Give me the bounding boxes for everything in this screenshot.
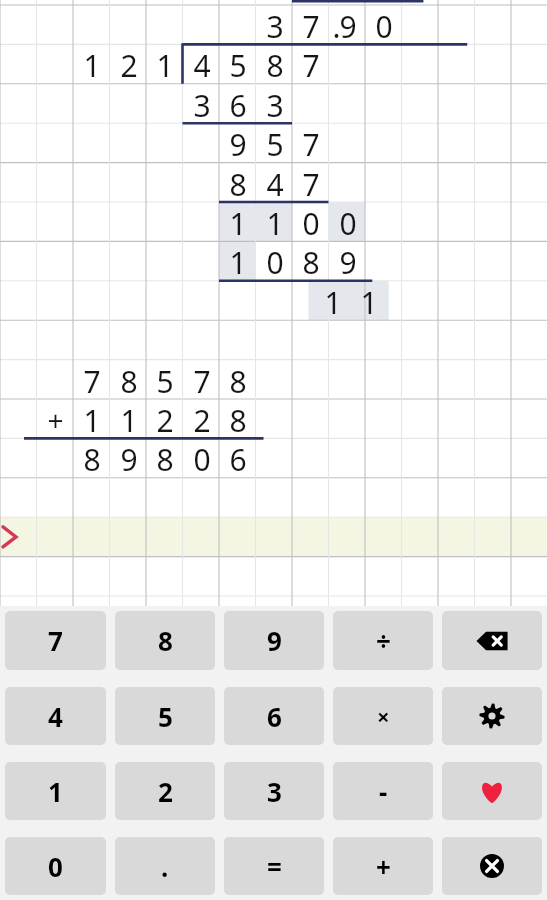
button[interactable]: Backspace [442,611,542,670]
staticText: 3 [266,6,284,45]
button[interactable]: 1 [5,762,106,820]
staticText: 7 [302,6,320,45]
staticText: 1 [83,400,101,439]
staticText: 9 [339,6,357,45]
staticText: 2 [193,400,211,439]
staticText: = [267,849,282,884]
staticText: 2 [120,45,138,84]
button[interactable]: 3 [224,762,324,820]
staticText: 5 [156,361,174,400]
staticText: + [376,849,391,884]
staticText: 7 [302,45,320,84]
staticText: 8 [83,439,101,478]
staticText: 5 [266,124,284,163]
staticText: 8 [266,45,284,84]
staticText: 4 [193,45,211,84]
button[interactable]: 4 [5,687,106,745]
staticText: 8 [156,439,174,478]
staticText: . [332,6,341,45]
staticText: 7 [83,361,101,400]
staticText: 9 [339,242,357,281]
staticText: 0 [375,6,393,45]
staticText: + [47,401,64,439]
staticText: 8 [158,623,173,658]
staticText: 7 [302,164,320,203]
staticText: 7 [302,124,320,163]
staticText: 9 [229,124,247,163]
staticText: 1 [229,242,247,281]
staticText: 3 [266,85,284,124]
staticText: 8 [302,242,320,281]
button[interactable]: 2 [115,762,215,820]
staticText: 1 [229,203,247,242]
staticText: 3 [193,85,211,124]
button[interactable]: 0 [5,837,106,895]
button[interactable]: - [333,762,433,820]
staticText: 1 [266,203,284,242]
staticText: 9 [267,623,282,658]
button[interactable]: 9 [224,611,324,670]
staticText: 1 [48,774,63,809]
staticText: 0 [302,203,320,242]
button[interactable]: 6 [224,687,324,745]
staticText: 6 [267,699,282,734]
button[interactable]: 8 [115,611,215,670]
button[interactable]: + [333,837,433,895]
button[interactable]: 7 [5,611,106,670]
button[interactable]: Clear [442,837,542,895]
staticText: 1 [83,45,101,84]
staticText: 2 [158,774,173,809]
button[interactable]: 5 [115,687,215,745]
staticText: 8 [120,361,138,400]
staticText: 0 [193,439,211,478]
button[interactable]: . [115,837,215,895]
staticText: 1 [120,400,138,439]
button[interactable]: × [333,687,433,745]
staticText: 8 [229,361,247,400]
staticText: 8 [229,400,247,439]
staticText: 7 [193,361,211,400]
staticText: 2 [156,400,174,439]
staticText: 0 [266,242,284,281]
staticText: 8 [229,164,247,203]
button[interactable]: Settings [442,687,542,745]
button[interactable]: ÷ [333,611,433,670]
staticText: 1 [156,45,174,84]
staticText: 0 [48,849,63,884]
staticText: 4 [48,699,63,734]
staticText: 3 [267,774,282,809]
staticText: 6 [229,439,247,478]
button[interactable]: = [224,837,324,895]
staticText: . [161,849,169,884]
staticText: 1 [324,282,342,321]
staticText: 4 [266,164,284,203]
button[interactable]: Favorite [442,762,542,820]
staticText: ÷ [376,623,391,658]
staticText: 6 [229,85,247,124]
staticText: 9 [120,439,138,478]
staticText: 7 [48,623,63,658]
staticText: × [377,701,390,731]
staticText: 0 [339,203,357,242]
staticText: 5 [229,45,247,84]
staticText: 1 [360,282,378,321]
staticText: 5 [158,699,173,734]
staticText: - [379,774,388,809]
